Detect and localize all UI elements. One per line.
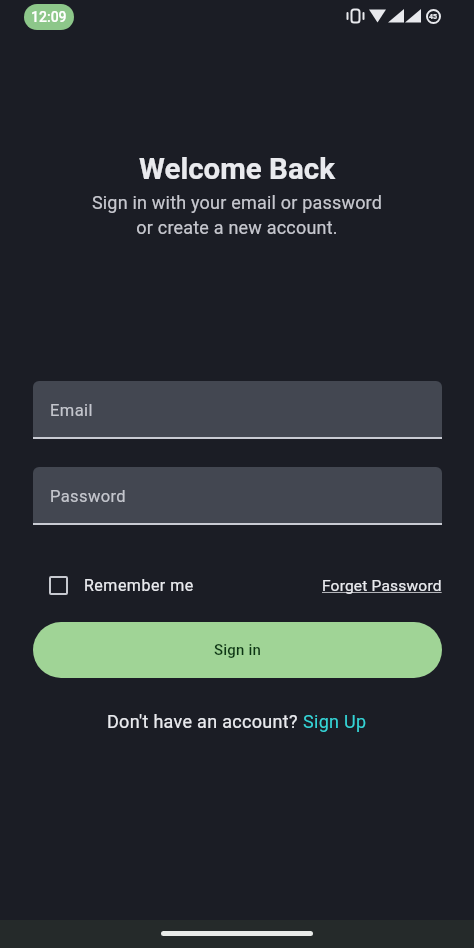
staticText: Welcome Back bbox=[0, 152, 474, 187]
button[interactable]: Email bbox=[33, 381, 442, 439]
staticText: Don't have an account? bbox=[107, 711, 303, 732]
staticText: Remember me bbox=[84, 576, 194, 595]
button[interactable]: Forget Password bbox=[322, 577, 442, 595]
button[interactable]: Remember me bbox=[49, 574, 194, 596]
button[interactable]: Sign Up bbox=[303, 711, 367, 732]
staticText: 12:09 bbox=[31, 9, 67, 25]
staticText: Sign in with your email or password or c… bbox=[0, 192, 474, 238]
staticText: 45 bbox=[429, 13, 438, 21]
staticText: Sign in bbox=[214, 641, 262, 659]
staticText: Password bbox=[50, 487, 127, 506]
staticText: Email bbox=[50, 401, 93, 420]
button[interactable]: Sign in bbox=[33, 622, 442, 678]
button[interactable]: Password bbox=[33, 467, 442, 525]
